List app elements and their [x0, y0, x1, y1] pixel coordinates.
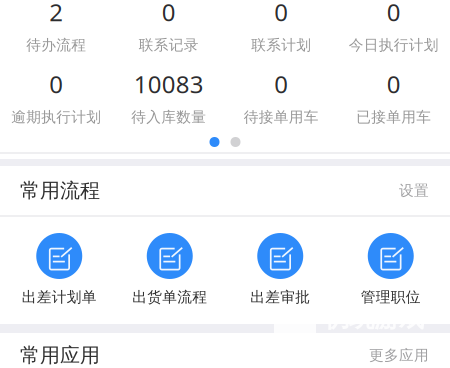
button[interactable]: 0 — [225, 1, 337, 53]
staticText: 待办流程 — [26, 36, 86, 54]
staticText: 常用流程 — [20, 178, 100, 203]
staticText: 逾期执行计划 — [11, 108, 101, 126]
staticText: Rengwan Games — [303, 327, 450, 351]
button[interactable]: 0 — [225, 73, 337, 125]
staticText: 0 — [387, 0, 401, 28]
staticText: 0 — [387, 68, 401, 100]
staticText: 今日执行计划 — [349, 36, 439, 54]
staticText: 0 — [274, 0, 288, 28]
staticText: 设置 — [399, 181, 429, 199]
staticText: 出货单流程 — [132, 288, 207, 306]
staticText: 常用应用 — [20, 343, 100, 368]
staticText: 出差审批 — [250, 288, 310, 306]
staticText: 出差计划单 — [22, 288, 97, 306]
staticText: 更多应用 — [369, 346, 429, 364]
button[interactable]: 0 — [0, 73, 112, 125]
staticText: 待接单用车 — [244, 108, 319, 126]
staticText: 联系记录 — [139, 36, 199, 54]
staticText: 已接单用车 — [356, 108, 431, 126]
staticText: 仍玩游戏 — [324, 302, 424, 333]
button[interactable]: 更多应用 — [369, 346, 429, 364]
staticText: 2 — [49, 0, 63, 28]
button[interactable]: 0 — [337, 73, 450, 125]
button[interactable]: 出差计划单 — [4, 233, 114, 305]
button[interactable]: 出差审批 — [225, 233, 335, 305]
staticText: 0 — [162, 0, 176, 28]
staticText: 待入库数量 — [131, 108, 206, 126]
staticText: 联系计划 — [251, 36, 311, 54]
staticText: 0 — [49, 68, 63, 100]
button[interactable]: 2 — [0, 1, 112, 53]
button[interactable]: 0 — [112, 1, 225, 53]
staticText: 0 — [274, 68, 288, 100]
button[interactable]: 出货单流程 — [114, 233, 225, 305]
button[interactable]: 0 — [337, 1, 450, 53]
button[interactable]: 管理职位 — [335, 233, 446, 305]
staticText: 10083 — [134, 68, 204, 100]
staticText: 管理职位 — [361, 288, 421, 306]
button[interactable]: 10083 — [112, 73, 225, 125]
button[interactable]: 设置 — [399, 181, 429, 199]
